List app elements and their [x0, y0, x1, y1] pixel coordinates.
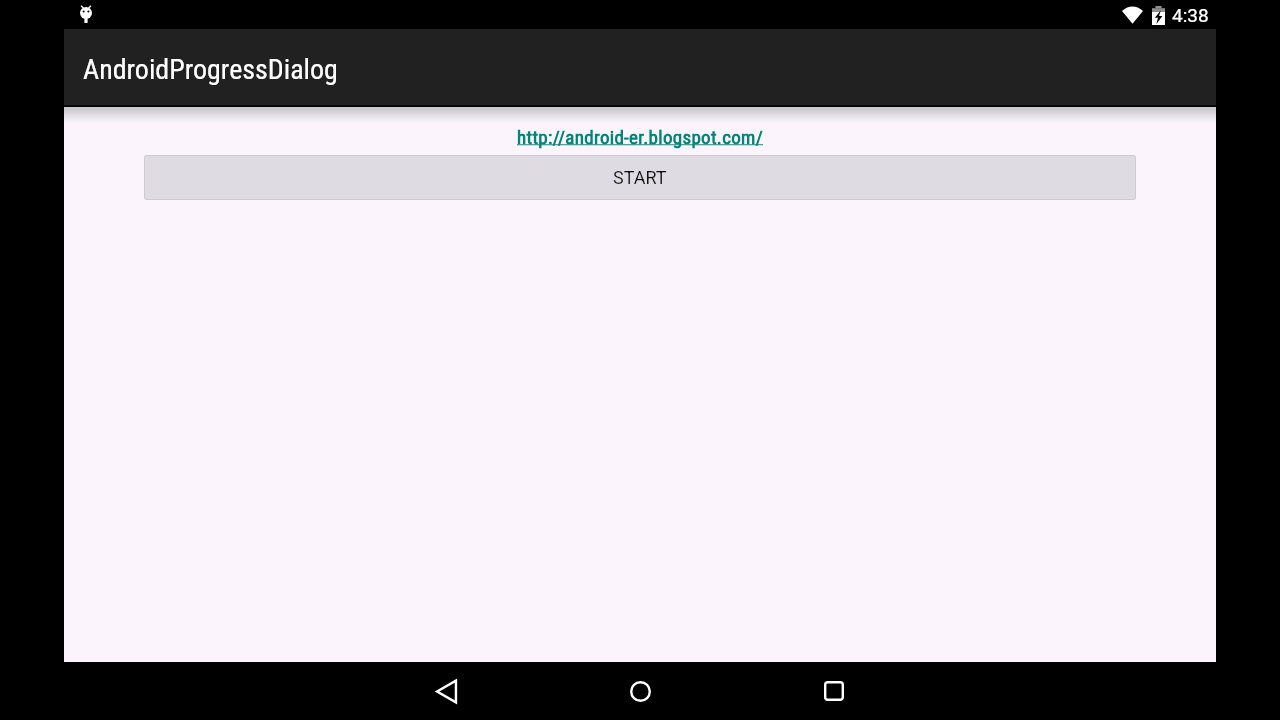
button[interactable]: http://android-er.blogspot.com/: [64, 126, 1216, 148]
staticText: AndroidProgressDialog: [83, 53, 338, 86]
button[interactable]: Home: [596, 662, 684, 720]
staticText: START: [613, 167, 667, 188]
button[interactable]: Recent apps: [790, 662, 878, 720]
button[interactable]: START: [144, 155, 1136, 200]
staticText: 4:38: [1172, 4, 1209, 26]
button[interactable]: Back: [402, 662, 490, 720]
